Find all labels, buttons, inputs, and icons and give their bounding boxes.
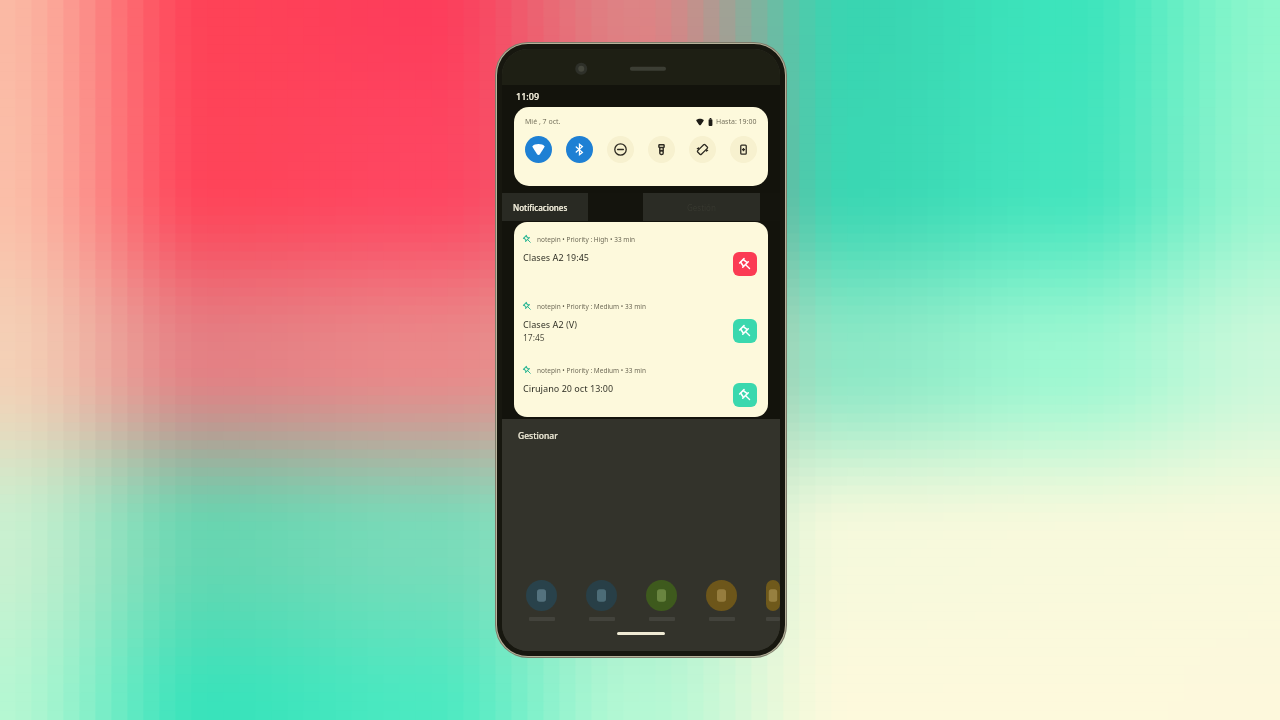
button[interactable]: Do not disturb xyxy=(607,136,634,163)
button[interactable]: Battery saver xyxy=(730,136,757,163)
button[interactable]: notepin • Priority : High • 33 min xyxy=(514,235,768,276)
button[interactable]: Mié , 7 oct. xyxy=(525,117,561,127)
staticText: Hasta: 19:00 xyxy=(716,117,757,127)
button[interactable]: Pin notification xyxy=(733,252,757,276)
button[interactable]: Phone xyxy=(766,580,780,611)
button[interactable]: Pin notification xyxy=(733,383,757,407)
staticText: Clases A2 19:45 xyxy=(523,251,589,263)
button[interactable]: Flashlight xyxy=(648,136,675,163)
staticText: Notificaciones xyxy=(513,202,568,213)
button[interactable]: Calendar xyxy=(526,580,557,611)
button[interactable]: WhatsApp xyxy=(586,580,617,611)
button[interactable]: Bluetooth xyxy=(566,136,593,163)
button[interactable]: Notificaciones xyxy=(502,193,588,221)
staticText: Clases A2 (V) xyxy=(523,318,578,330)
button[interactable]: Contacts xyxy=(706,580,737,611)
staticText: Cirujano 20 oct 13:00 xyxy=(523,382,614,394)
staticText: 17:45 xyxy=(523,332,545,344)
staticText: Gestionar xyxy=(518,430,558,442)
button[interactable]: Auto-rotate xyxy=(689,136,716,163)
staticText: 11:09 xyxy=(516,90,540,102)
button[interactable]: Wi-Fi xyxy=(525,136,552,163)
staticText: notepin • Priority : High • 33 min xyxy=(537,235,636,244)
staticText: notepin • Priority : Medium • 33 min xyxy=(537,302,646,311)
button[interactable]: notepin • Priority : Medium • 33 min xyxy=(514,302,768,344)
staticText: notepin • Priority : Medium • 33 min xyxy=(537,366,646,375)
button[interactable]: notepin • Priority : Medium • 33 min xyxy=(514,366,768,407)
button[interactable]: Maps xyxy=(646,580,677,611)
button[interactable]: Pin notification xyxy=(733,319,757,343)
